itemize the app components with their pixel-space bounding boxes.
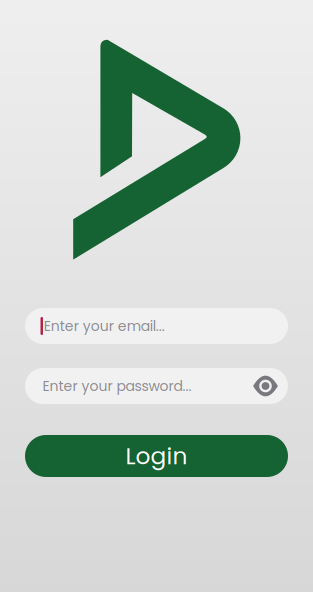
- staticText: Enter your password...: [42, 376, 191, 396]
- staticText: Enter your email...: [44, 316, 165, 336]
- button[interactable]: Login: [25, 435, 288, 477]
- staticText: Login: [125, 440, 187, 472]
- button[interactable]: Enter your password...: [25, 368, 288, 404]
- button[interactable]: Enter your email...: [25, 308, 288, 344]
